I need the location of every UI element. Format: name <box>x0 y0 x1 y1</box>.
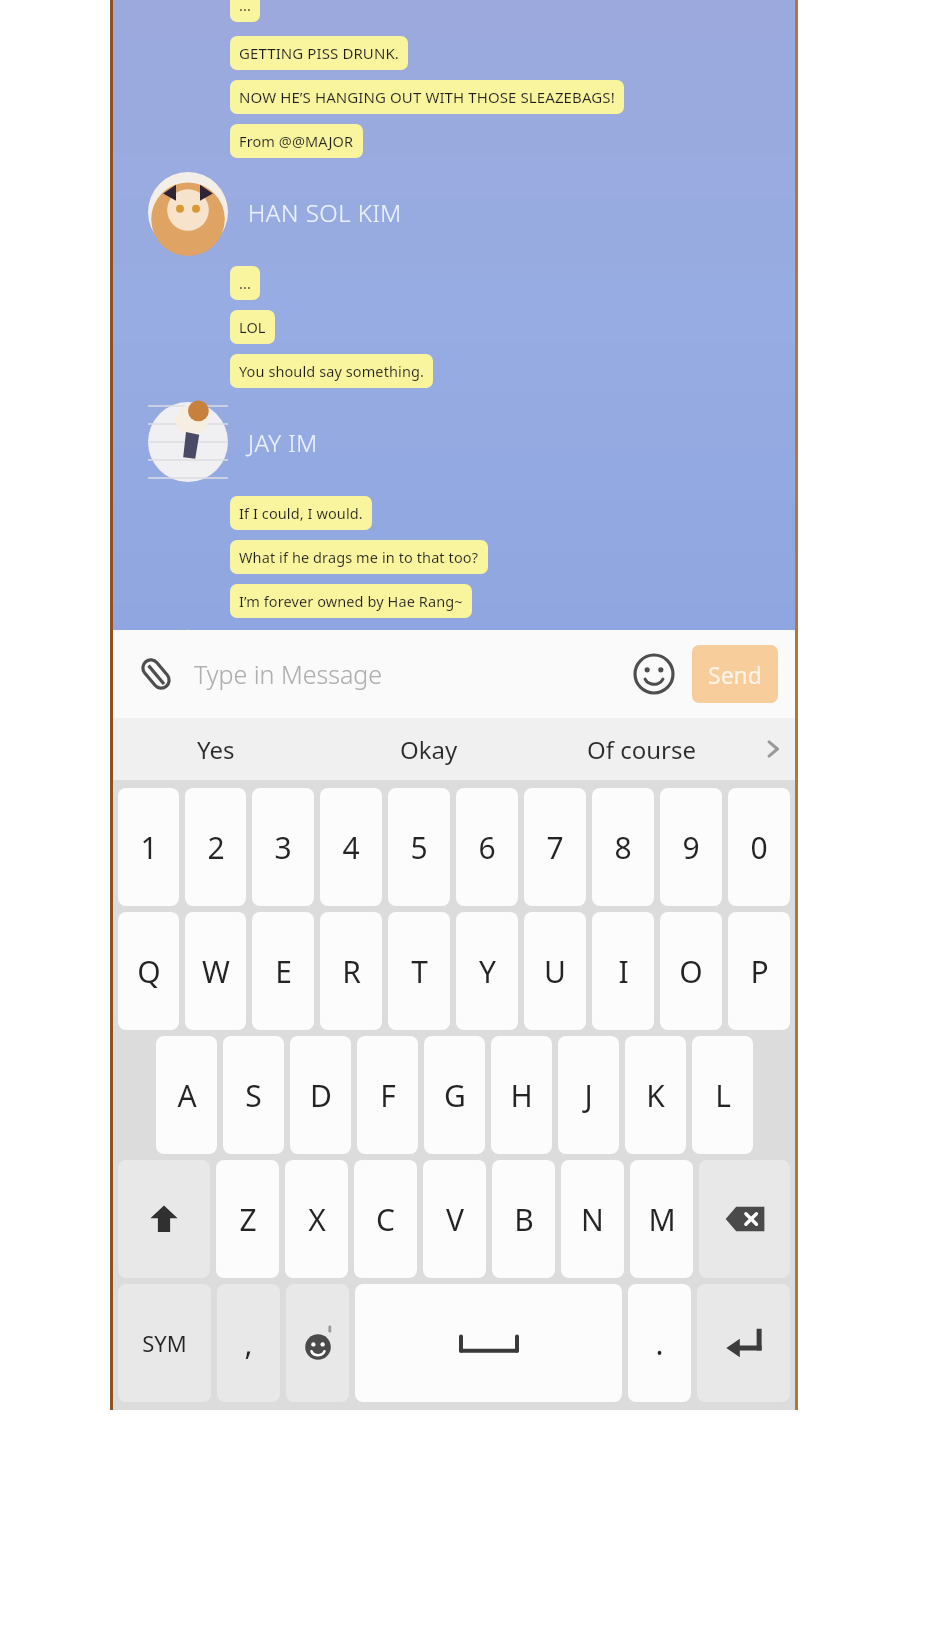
button[interactable]: F <box>357 1036 418 1154</box>
button[interactable]: If I could, I would. <box>230 496 372 530</box>
button[interactable]: Backspace <box>699 1160 790 1278</box>
button[interactable]: I <box>592 912 654 1030</box>
staticText: SYM <box>142 1328 187 1358</box>
staticText: ... <box>239 273 251 293</box>
button[interactable]: Q <box>118 912 179 1030</box>
other: Avatar <box>148 172 228 252</box>
button[interactable]: H <box>491 1036 552 1154</box>
button[interactable]: P <box>728 912 790 1030</box>
staticText: From @@MAJOR <box>239 131 354 151</box>
staticText: S <box>245 1075 262 1116</box>
staticText: I <box>618 951 629 992</box>
staticText: 1 <box>140 827 158 868</box>
button[interactable]: U <box>524 912 586 1030</box>
button[interactable] <box>355 1284 622 1402</box>
button[interactable]: D <box>290 1036 351 1154</box>
button[interactable]: L <box>692 1036 753 1154</box>
button[interactable]: Attach file <box>130 648 182 700</box>
button[interactable]: R <box>320 912 382 1030</box>
button[interactable]: S <box>223 1036 284 1154</box>
button[interactable]: Type in Message <box>194 657 626 691</box>
staticText: P <box>750 951 769 992</box>
button[interactable]: LOL <box>230 310 275 344</box>
staticText: M <box>648 1199 676 1240</box>
button[interactable]: From @@MAJOR <box>230 124 363 158</box>
button[interactable]: NOW HE’S HANGING OUT WITH THOSE SLEAZEBA… <box>230 80 624 114</box>
staticText: ... <box>239 0 251 15</box>
button[interactable]: O <box>660 912 722 1030</box>
button[interactable]: More suggestions <box>748 718 798 780</box>
button[interactable]: 5 <box>388 788 450 906</box>
button[interactable]: E <box>252 912 314 1030</box>
button[interactable]: X <box>285 1160 348 1278</box>
staticText: Q <box>137 951 161 992</box>
button[interactable]: ... <box>230 266 260 300</box>
button[interactable]: GETTING PISS DRUNK. <box>230 36 408 70</box>
staticText: You should say something. <box>239 361 424 381</box>
staticText: LOL <box>239 317 266 337</box>
staticText: H <box>510 1075 533 1116</box>
button[interactable]: What if he drags me in to that too? <box>230 540 488 574</box>
button[interactable]: Avatar <box>110 172 798 252</box>
button[interactable]: , <box>217 1284 280 1402</box>
button[interactable]: I’m forever owned by Hae Rang~ <box>230 584 472 618</box>
staticText: R <box>342 951 361 992</box>
staticText: G <box>444 1075 466 1116</box>
button[interactable]: SYM <box>118 1284 211 1402</box>
button[interactable]: Okay <box>322 718 535 780</box>
staticText: Yes <box>197 733 235 766</box>
staticText: C <box>376 1199 395 1240</box>
button[interactable]: Shift <box>118 1160 210 1278</box>
staticText: What if he drags me in to that too? <box>239 547 479 567</box>
button[interactable]: Of course <box>535 718 748 780</box>
button[interactable]: 1 <box>118 788 179 906</box>
button[interactable]: 0 <box>728 788 790 906</box>
staticText: O <box>679 951 703 992</box>
button[interactable]: N <box>561 1160 624 1278</box>
button[interactable]: You should say something. <box>230 354 433 388</box>
button[interactable]: 3 <box>252 788 314 906</box>
button[interactable]: K <box>625 1036 686 1154</box>
staticText: 5 <box>410 827 428 868</box>
staticText: A <box>177 1075 197 1116</box>
button[interactable]: Emoji <box>626 646 682 702</box>
button[interactable]: J <box>558 1036 619 1154</box>
button[interactable]: 8 <box>592 788 654 906</box>
staticText: U <box>544 951 566 992</box>
staticText: HAN SOL KIM <box>248 196 402 229</box>
button[interactable]: T <box>388 912 450 1030</box>
staticText: 3 <box>274 827 292 868</box>
button[interactable]: M <box>630 1160 693 1278</box>
button[interactable]: Send <box>692 645 778 703</box>
staticText: B <box>514 1199 534 1240</box>
staticText: 9 <box>682 827 700 868</box>
button[interactable]: 6 <box>456 788 518 906</box>
button[interactable]: Avatar <box>110 402 798 482</box>
staticText: N <box>581 1199 604 1240</box>
button[interactable]: A <box>156 1036 217 1154</box>
button[interactable]: Z <box>216 1160 279 1278</box>
button[interactable]: G <box>424 1036 485 1154</box>
button[interactable]: W <box>185 912 246 1030</box>
button[interactable]: . <box>628 1284 691 1402</box>
staticText: K <box>646 1075 665 1116</box>
button[interactable]: ... <box>230 0 260 22</box>
button[interactable]: Yes <box>110 718 322 780</box>
button[interactable]: C <box>354 1160 417 1278</box>
staticText: . <box>655 1323 664 1364</box>
staticText: GETTING PISS DRUNK. <box>239 43 399 63</box>
button[interactable]: 7 <box>524 788 586 906</box>
button[interactable]: 9 <box>660 788 722 906</box>
button[interactable]: B <box>492 1160 555 1278</box>
button[interactable]: Voice input <box>286 1284 349 1402</box>
button[interactable]: 4 <box>320 788 382 906</box>
staticText: 8 <box>614 827 632 868</box>
staticText: Z <box>239 1199 257 1240</box>
button[interactable]: V <box>423 1160 486 1278</box>
staticText: W <box>202 951 230 992</box>
button[interactable]: 2 <box>185 788 246 906</box>
staticText: Okay <box>400 733 458 766</box>
staticText: E <box>275 951 292 992</box>
button[interactable]: Y <box>456 912 518 1030</box>
button[interactable]: Enter <box>697 1284 790 1402</box>
